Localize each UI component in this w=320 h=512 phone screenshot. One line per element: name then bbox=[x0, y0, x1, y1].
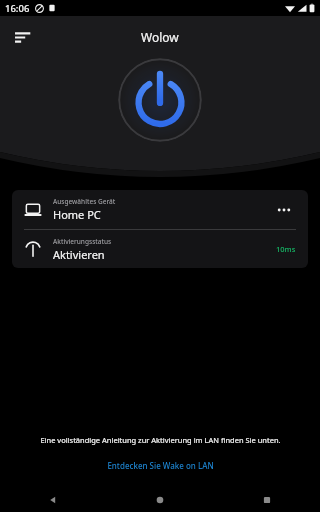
staticText: Ausgewähltes Gerät bbox=[53, 197, 116, 206]
staticText: 10ms bbox=[276, 244, 296, 254]
button[interactable]: Entdecken Sie Wake on LAN bbox=[99, 457, 222, 474]
staticText: Entdecken Sie Wake on LAN bbox=[107, 460, 214, 471]
button[interactable]: Back bbox=[0, 488, 106, 512]
staticText: Home PC bbox=[53, 207, 101, 222]
button[interactable]: Recent apps bbox=[213, 488, 320, 512]
staticText: Aktivierungsstatus bbox=[53, 237, 112, 246]
button[interactable]: Home bbox=[106, 488, 213, 512]
staticText: Eine vollständige Anleitung zur Aktivier… bbox=[40, 435, 281, 445]
staticText: 16:06 bbox=[5, 2, 30, 15]
button[interactable]: Ausgewähltes Gerät bbox=[12, 190, 308, 229]
button[interactable]: Aktivierungsstatus bbox=[12, 230, 308, 268]
button[interactable]: Menu bbox=[4, 19, 40, 55]
staticText: Aktivieren bbox=[53, 247, 105, 262]
staticText: Wolow bbox=[141, 29, 179, 45]
button[interactable]: More options bbox=[270, 196, 298, 224]
button[interactable]: Wake device bbox=[118, 58, 202, 142]
